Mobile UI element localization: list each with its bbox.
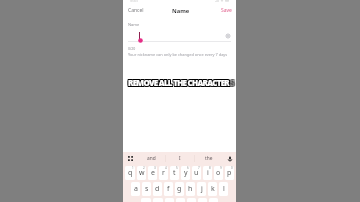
staticText: k [211,184,215,194]
staticText: Your nickname can only be changed once e… [128,52,228,57]
button[interactable]: x [153,198,163,202]
button[interactable]: b [187,198,196,202]
button[interactable]: w [137,166,146,180]
staticText: 2 [143,166,145,170]
button[interactable]: h [186,182,195,196]
button[interactable]: q [125,166,135,180]
staticText: t [173,168,176,178]
staticText: and [147,155,156,162]
staticText: Name [172,7,190,15]
staticText: REMOVE ALL THE CHARACTER [128,76,230,87]
staticText: o [216,168,221,178]
staticText: e [151,168,155,178]
staticText: REMOVE ALL THE CHARACTER [129,78,231,89]
staticText: REMOVE ALL THE CHARACTER [129,76,231,87]
button[interactable]: s [142,182,151,196]
staticText: REMOVE ALL THE CHARACTER [127,77,229,88]
button[interactable]: e [148,166,157,180]
button[interactable]: z [141,198,151,202]
button[interactable]: y [181,166,190,180]
staticText: y [184,168,188,178]
staticText: a [134,184,138,194]
staticText: S [230,77,234,88]
staticText: f [167,184,170,194]
button[interactable]: g [175,182,184,196]
button[interactable]: k [208,182,217,196]
staticText: S [229,78,233,89]
button[interactable]: Cancel [123,5,148,16]
staticText: 8 [209,166,211,170]
staticText: q [128,168,133,178]
staticText: S [230,76,234,87]
staticText: 3 [154,166,156,170]
staticText: h [188,184,193,194]
button[interactable]: the [195,152,223,165]
staticText: r [162,168,165,178]
staticText: j [201,184,203,194]
staticText: i [207,168,209,178]
staticText: Name [128,22,140,27]
button[interactable]: i [203,166,212,180]
staticText: p [227,168,232,178]
staticText: S [229,76,233,87]
button[interactable]: c [165,198,174,202]
button[interactable]: j [197,182,206,196]
staticText: REMOVE ALL THE CHARACTER [128,77,230,88]
button[interactable]: t [170,166,179,180]
button[interactable]: I [166,152,194,165]
staticText: 5 [176,166,178,170]
button[interactable]: r [159,166,168,180]
staticText: REMOVE ALL THE CHARACTER [127,76,229,87]
staticText: s [145,184,149,194]
staticText: 1 [132,166,134,170]
button[interactable]: v [176,198,185,202]
button[interactable]: l [219,182,228,196]
staticText: g [177,184,182,194]
button[interactable]: Save [217,5,236,16]
staticText: w [139,168,145,178]
staticText: REMOVE ALL THE CHARACTER [128,78,230,89]
staticText: 4 [165,166,167,170]
staticText: l [223,184,225,194]
button[interactable]: d [153,182,162,196]
staticText: REMOVE ALL THE CHARACTER [127,78,229,89]
staticText: u [194,168,199,178]
button[interactable]: n [198,198,207,202]
staticText: d [155,184,160,194]
button[interactable]: and [137,152,165,165]
staticText: I [179,155,181,162]
staticText: 6 [187,166,189,170]
button[interactable]: m [209,198,218,202]
staticText: Save [221,7,232,14]
staticText: Cancel [128,7,144,14]
staticText: S [231,77,235,88]
button[interactable]: Clear text [225,33,231,39]
button[interactable]: Voice input [223,152,236,165]
staticText: S [230,78,234,89]
staticText: 0 [231,166,233,170]
staticText: 9:41 [130,0,138,3]
staticText: S [231,76,235,87]
staticText: S [229,77,233,88]
button[interactable]: p [225,166,234,180]
button[interactable]: o [214,166,223,180]
staticText: 9 [220,166,222,170]
staticText: 0/20 [128,46,136,51]
staticText: S [231,78,235,89]
staticText: REMOVE ALL THE CHARACTER [129,77,231,88]
staticText: 7 [198,166,200,170]
button[interactable]: f [164,182,173,196]
button[interactable]: a [131,182,140,196]
button[interactable]: Keyboard menu [123,152,137,165]
staticText: the [205,155,213,162]
button[interactable]: u [192,166,201,180]
